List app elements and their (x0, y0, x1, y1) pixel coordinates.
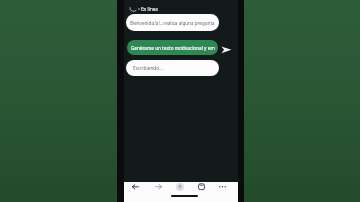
button[interactable]: Genérame un texto motivacional y em (127, 40, 218, 55)
button[interactable] (221, 46, 232, 54)
button[interactable] (197, 182, 206, 191)
button[interactable] (175, 182, 185, 192)
staticText: En línea (141, 6, 158, 12)
button[interactable] (153, 182, 164, 191)
staticText: Genérame un texto motivacional y em (131, 45, 215, 51)
button[interactable]: Bienvenido/a!...realiza alguna pregunta (126, 14, 219, 31)
staticText: Escribiendo... (133, 65, 164, 72)
staticText: Bienvenido/a!...realiza alguna pregunta (130, 20, 215, 26)
button[interactable] (130, 182, 141, 191)
button[interactable] (217, 182, 228, 191)
button[interactable]: Escribiendo... (126, 60, 219, 76)
